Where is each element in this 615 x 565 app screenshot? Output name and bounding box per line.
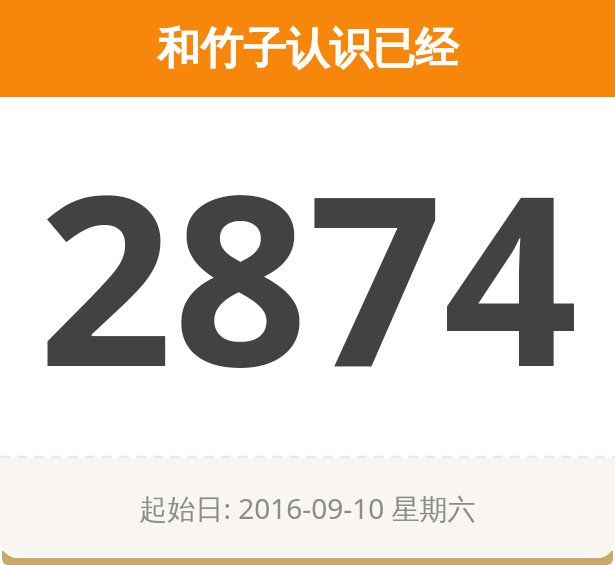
- staticText: 和竹子认识已经: [157, 22, 458, 76]
- staticText: 起始日: 2016-09-10 星期六: [139, 489, 476, 527]
- button[interactable]: 和竹子认识已经: [0, 0, 615, 97]
- button[interactable]: 起始日: 2016-09-10 星期六: [0, 458, 615, 558]
- button[interactable]: 和竹子认识已经: [0, 0, 615, 558]
- staticText: 2874: [38, 114, 578, 435]
